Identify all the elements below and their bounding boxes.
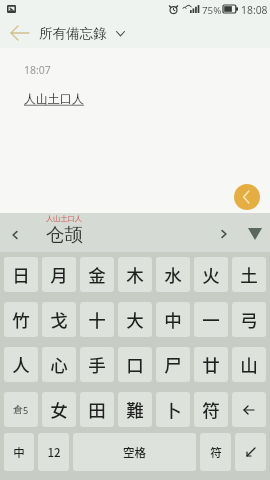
staticText: 75%	[202, 4, 222, 17]
button[interactable]: Previous note	[234, 184, 260, 210]
staticText: 口	[126, 352, 144, 377]
button[interactable]: 十	[80, 302, 114, 337]
button[interactable]: Hide keyboard	[248, 228, 262, 240]
button[interactable]: 人	[4, 347, 38, 382]
button[interactable]: 倉	[4, 392, 38, 427]
button[interactable]: 戈	[42, 302, 76, 337]
staticText: 金	[88, 262, 106, 287]
button[interactable]: 中	[4, 433, 34, 471]
staticText: 水	[164, 262, 182, 287]
button[interactable]: 木	[118, 257, 152, 292]
staticText: 12	[47, 444, 61, 461]
staticText: 人山土口人	[46, 214, 82, 223]
button[interactable]: 口	[118, 347, 152, 382]
staticText: 難	[126, 397, 144, 422]
button[interactable]: 山	[232, 347, 266, 382]
button[interactable]: 空格	[73, 433, 196, 471]
staticText: 木	[126, 262, 144, 287]
button[interactable]: 弓	[232, 302, 266, 337]
staticText: 空格	[123, 444, 146, 461]
staticText: 所有備忘錄	[39, 25, 107, 42]
button[interactable]: 心	[42, 347, 76, 382]
staticText: 中	[13, 444, 25, 461]
button[interactable]: 一	[194, 302, 228, 337]
button[interactable]: 卜	[156, 392, 190, 427]
button[interactable]: Back	[6, 19, 34, 47]
button[interactable]: 大	[118, 302, 152, 337]
button[interactable]: 中	[156, 302, 190, 337]
staticText: 火	[202, 262, 220, 287]
button[interactable]	[232, 392, 266, 427]
staticText: 山	[240, 352, 258, 377]
button[interactable]: 女	[42, 392, 76, 427]
button[interactable]: 田	[80, 392, 114, 427]
staticText: 5	[23, 404, 29, 416]
button[interactable]: 月	[42, 257, 76, 292]
button[interactable]: 竹	[4, 302, 38, 337]
button[interactable]: 金	[80, 257, 114, 292]
staticText: 竹	[12, 307, 30, 332]
staticText: 大	[126, 307, 144, 332]
staticText: 心	[50, 352, 68, 377]
staticText: 尸	[164, 352, 182, 377]
staticText: 仓颉	[46, 223, 83, 246]
staticText: 人山土口人	[24, 91, 84, 106]
staticText: 月	[50, 262, 68, 287]
button[interactable]: 符	[200, 433, 231, 471]
staticText: 弓	[240, 307, 258, 332]
button[interactable]: 日	[4, 257, 38, 292]
staticText: 人	[12, 352, 30, 377]
button[interactable]: 12	[38, 433, 69, 471]
staticText: 女	[50, 397, 68, 422]
staticText: 田	[88, 397, 106, 422]
button[interactable]: 尸	[156, 347, 190, 382]
button[interactable]: 難	[118, 392, 152, 427]
button[interactable]: 火	[194, 257, 228, 292]
staticText: 中	[164, 307, 182, 332]
staticText: 廿	[202, 352, 220, 377]
staticText: 符	[202, 397, 220, 422]
staticText: 符	[210, 444, 222, 461]
staticText: 土	[240, 262, 258, 287]
staticText: 18:07	[24, 63, 51, 77]
button[interactable]: Next page	[212, 222, 236, 246]
button[interactable]: 手	[80, 347, 114, 382]
staticText: 手	[88, 352, 106, 377]
button[interactable]: 符	[194, 392, 228, 427]
button[interactable]: 土	[232, 257, 266, 292]
button[interactable]: Previous page	[3, 223, 27, 247]
staticText: 日	[12, 262, 30, 287]
staticText: 戈	[50, 307, 68, 332]
button[interactable]: 水	[156, 257, 190, 292]
staticText: 卜	[164, 397, 182, 422]
button[interactable]: 廿	[194, 347, 228, 382]
button[interactable]	[235, 433, 266, 471]
staticText: 十	[88, 307, 106, 332]
staticText: 倉	[13, 403, 23, 416]
staticText: 一	[202, 307, 220, 332]
staticText: 18:08	[241, 3, 268, 17]
